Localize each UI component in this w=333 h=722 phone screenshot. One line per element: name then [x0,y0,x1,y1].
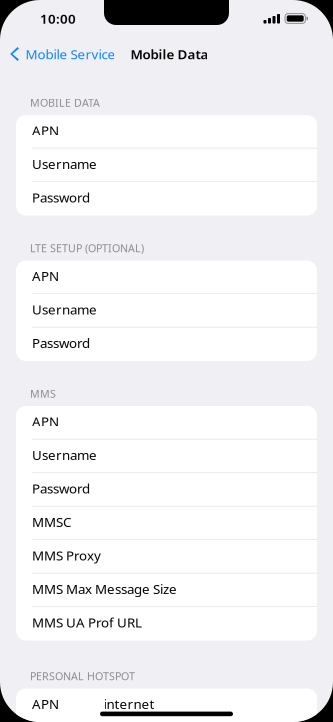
button[interactable]: Password [16,327,317,361]
staticText: MMS Proxy [32,546,101,564]
button[interactable]: APN [16,688,317,722]
button[interactable]: APN [16,406,317,439]
button[interactable]: APN [16,260,317,294]
staticText: Password [32,334,90,352]
button[interactable]: Password [16,473,317,506]
staticText: Username [32,155,97,173]
staticText: Username [32,300,97,318]
button[interactable]: Mobile Service [0,37,123,71]
button[interactable]: Password [16,182,317,215]
staticText: APN [32,267,59,285]
staticText: LTE SETUP (OPTIONAL) [30,241,144,255]
staticText: MOBILE DATA [30,95,100,110]
staticText: MMS UA Prof URL [32,613,142,631]
staticText: Password [32,188,90,206]
staticText: MMS Max Message Size [32,580,177,598]
staticText: Mobile Data [130,45,208,63]
staticText: MMSC [32,513,71,531]
staticText: 10:00 [40,10,76,27]
button[interactable]: Username [16,439,317,473]
button[interactable]: MMS Max Message Size [16,573,317,607]
button[interactable]: Username [16,294,317,327]
button[interactable]: APN [16,115,317,148]
button[interactable]: MMS UA Prof URL [16,607,317,640]
staticText: APN [32,121,59,139]
staticText: PERSONAL HOTSPOT [30,669,135,683]
staticText: Username [32,446,97,464]
button[interactable]: MMSC [16,506,317,540]
staticText: MMS [30,386,56,401]
button[interactable]: MMS Proxy [16,540,317,573]
staticText: APN [32,412,59,430]
button[interactable]: Username [16,148,317,182]
staticText: internet [103,695,154,713]
staticText: Mobile Service [25,45,115,63]
staticText: APN [32,695,59,713]
staticText: Password [32,479,90,497]
